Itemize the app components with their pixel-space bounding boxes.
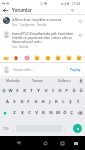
staticText: J	[49, 99, 51, 105]
button[interactable]: Voice input	[77, 76, 85, 85]
button[interactable]: R	[21, 85, 28, 96]
button[interactable]: Backspace	[75, 107, 85, 118]
button[interactable]: Emoji	[66, 55, 72, 61]
button[interactable]: L	[60, 96, 67, 107]
staticText: V	[35, 110, 38, 116]
button[interactable]: X	[18, 107, 26, 118]
staticText: Ü	[79, 88, 83, 94]
staticText: Z	[13, 110, 16, 116]
button[interactable]: M	[54, 107, 61, 118]
button[interactable]: Like	[77, 18, 83, 24]
staticText: hatexKT23 Binadlarinda pdk hazırlıdan, e…	[12, 31, 76, 44]
staticText: B	[42, 110, 45, 116]
button[interactable]: ?123	[0, 125, 11, 133]
button[interactable]: Kullanıcı	[51, 76, 77, 85]
button[interactable]: W	[7, 85, 14, 96]
button[interactable]: D	[18, 96, 25, 107]
staticText: O	[58, 88, 62, 94]
button[interactable]: Emoji	[76, 55, 82, 61]
button[interactable]: F	[25, 96, 32, 107]
staticText: jeffersclinat başlıkların sanırsa	[12, 17, 62, 22]
staticText: Yorum ekle...	[13, 67, 69, 72]
button[interactable]: Ü	[77, 85, 84, 96]
button[interactable]: Recents	[56, 137, 68, 149]
button[interactable]: B	[40, 107, 47, 118]
staticText: C	[28, 110, 31, 116]
button[interactable]: Ç	[68, 107, 75, 118]
button[interactable]: Ğ	[70, 85, 77, 96]
button[interactable]: C	[26, 107, 33, 118]
button[interactable]: A	[4, 96, 11, 107]
button[interactable]: Like	[77, 32, 83, 38]
staticText: S	[13, 99, 16, 105]
button[interactable]: Q	[1, 85, 7, 96]
button[interactable]: ,	[11, 125, 16, 133]
button[interactable]: H	[39, 96, 46, 107]
staticText: E	[16, 88, 19, 94]
button[interactable]: J	[46, 96, 53, 107]
staticText: R	[23, 88, 26, 94]
staticText: G	[34, 99, 38, 105]
button[interactable]: Ö	[61, 107, 68, 118]
staticText: N	[49, 110, 53, 116]
staticText: Y	[37, 88, 40, 94]
staticText: Yorumlar	[12, 7, 32, 13]
button[interactable]: U	[42, 85, 49, 96]
button[interactable]: Switch keyboard	[70, 137, 82, 149]
button[interactable]: Paylaş	[69, 65, 82, 74]
button[interactable]: Emoji	[34, 55, 40, 61]
staticText: Q	[2, 88, 6, 94]
button[interactable]: P	[63, 85, 70, 96]
button[interactable]: V	[33, 107, 40, 118]
staticText: Yanıtla	[19, 45, 29, 49]
button[interactable]: hatexKT23 Binadlarinda pdk hazırlıdan, e…	[0, 31, 85, 49]
staticText: 1 beğenme	[19, 23, 35, 27]
staticText: U	[44, 88, 48, 94]
button[interactable]: Ş	[67, 96, 74, 107]
staticText: 5sa	[12, 23, 17, 27]
staticText: 5sa	[12, 45, 17, 49]
button[interactable]: S	[11, 96, 18, 107]
button[interactable]: Emoji	[45, 55, 51, 61]
button[interactable]: G	[32, 96, 39, 107]
button[interactable]: Emoji	[55, 55, 61, 61]
staticText: F	[27, 99, 30, 105]
button[interactable]: Merhaba	[0, 76, 25, 85]
button[interactable]: T	[28, 85, 35, 96]
staticText: 17:44	[71, 1, 81, 6]
button[interactable]: Z	[10, 107, 18, 118]
staticText: X	[21, 110, 24, 116]
button[interactable]: K	[53, 96, 60, 107]
staticText: L	[62, 99, 65, 105]
staticText: ?123	[3, 127, 9, 131]
button[interactable]: Crown emoji	[3, 55, 9, 61]
button[interactable]: Tamam	[25, 76, 51, 85]
staticText: I	[52, 88, 54, 94]
staticText: H	[41, 99, 45, 105]
staticText: M	[56, 110, 60, 116]
button[interactable]: İ	[74, 96, 81, 107]
button[interactable]: Y	[35, 85, 42, 96]
button[interactable]: E	[14, 85, 21, 96]
button[interactable]: Back	[13, 137, 25, 149]
button[interactable]: .	[62, 125, 67, 133]
button[interactable]: Home	[39, 137, 51, 149]
button[interactable]: Send	[73, 124, 82, 133]
button[interactable]: Sort comments	[67, 6, 77, 14]
staticText: P	[65, 88, 68, 94]
button[interactable]: Fire emoji	[13, 55, 19, 61]
staticText: Ş	[69, 99, 72, 105]
button[interactable]: Back	[0, 6, 11, 14]
staticText: Ç	[70, 110, 73, 116]
button[interactable]: jeffersclinat başlıkların sanırsa	[0, 17, 85, 27]
staticText: A	[6, 99, 9, 105]
button[interactable]: N	[47, 107, 54, 118]
button[interactable]: I	[49, 85, 56, 96]
button[interactable]: Blossom emoji	[24, 55, 30, 61]
staticText: D	[20, 99, 24, 105]
button[interactable]: Shift	[0, 107, 10, 118]
staticText: .	[64, 127, 65, 131]
staticText: Merhaba	[6, 79, 20, 83]
button[interactable]: O	[56, 85, 63, 96]
